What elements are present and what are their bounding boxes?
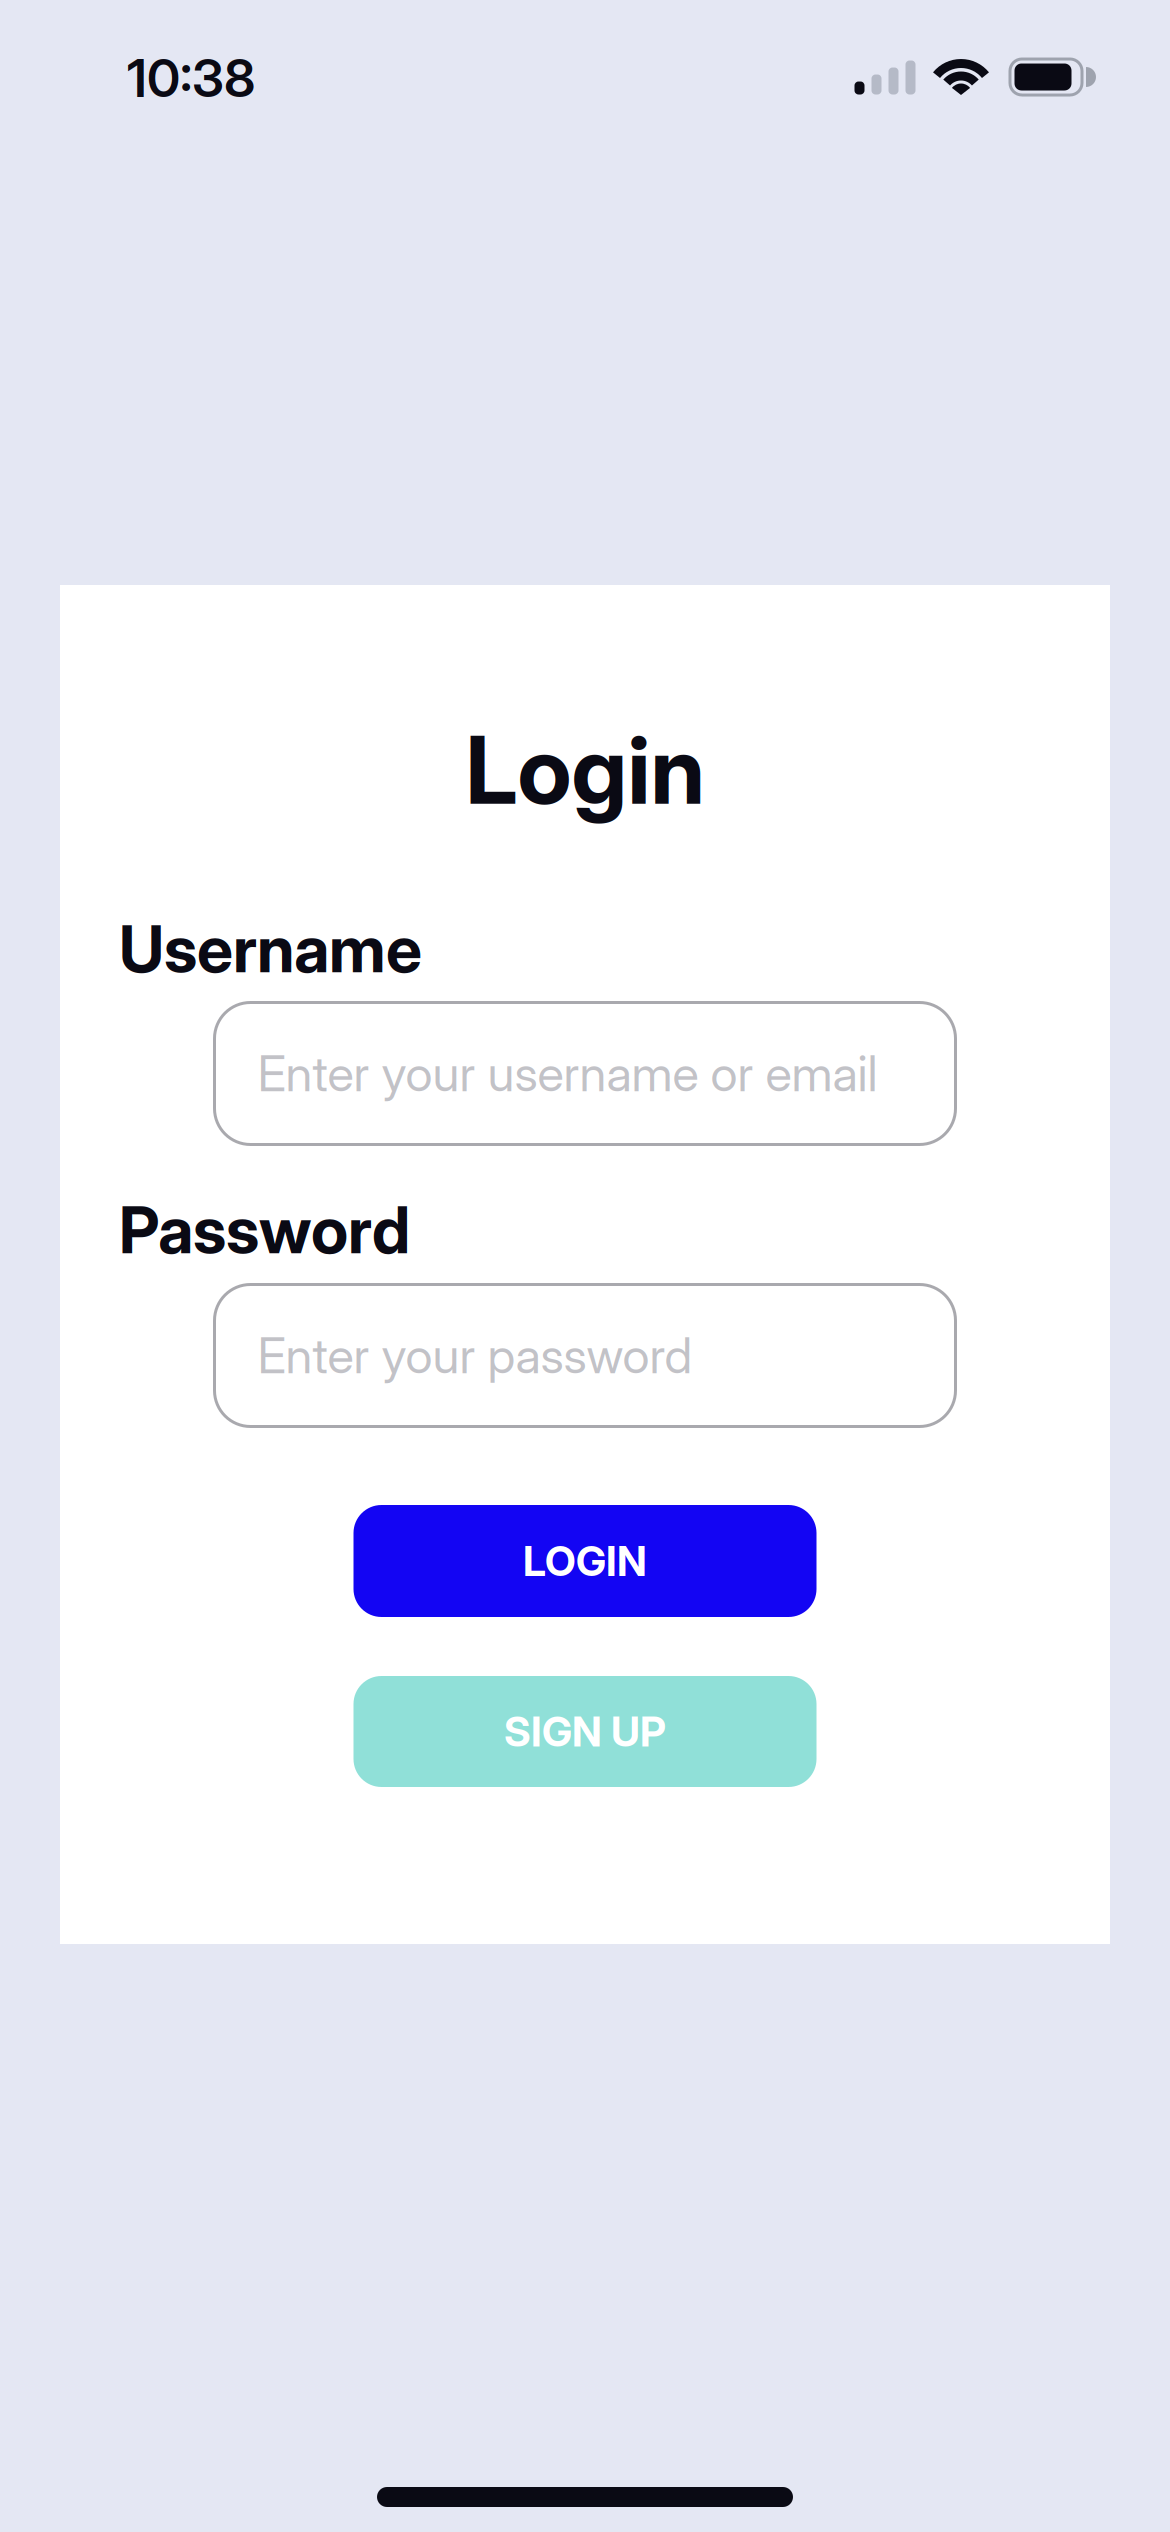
button[interactable]: Username text field: [214, 1002, 955, 1144]
staticText: LOGIN: [523, 1537, 647, 1585]
staticText: Login: [465, 715, 704, 825]
staticText: Enter your password: [257, 1327, 692, 1384]
staticText: 10:38: [127, 47, 255, 109]
staticText: Enter your username or email: [257, 1045, 877, 1102]
staticText: Password: [119, 1192, 410, 1268]
staticText: Username: [119, 911, 422, 987]
button[interactable]: Password text field: [214, 1284, 955, 1426]
button[interactable]: SIGN UP: [353, 1676, 816, 1787]
staticText: SIGN UP: [504, 1707, 666, 1756]
button[interactable]: LOGIN: [353, 1505, 816, 1617]
